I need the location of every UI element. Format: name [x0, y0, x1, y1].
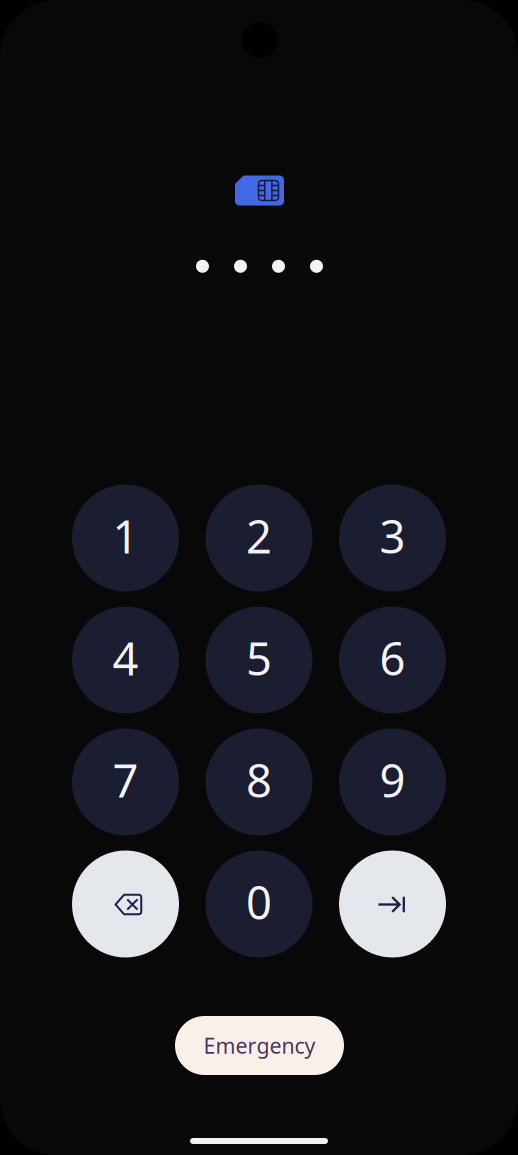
staticText: 3: [379, 506, 405, 566]
staticText: 1: [112, 506, 138, 566]
staticText: 0: [246, 872, 272, 932]
button[interactable]: 2: [205, 484, 312, 591]
button[interactable]: 9: [339, 728, 446, 835]
button[interactable]: 7: [72, 728, 179, 835]
button[interactable]: 3: [339, 484, 446, 591]
button[interactable]: Delete: [72, 850, 179, 957]
button[interactable]: Enter PIN: [339, 850, 446, 957]
button[interactable]: 1: [72, 484, 179, 591]
button[interactable]: Emergency: [175, 1016, 344, 1075]
button[interactable]: 8: [205, 728, 312, 835]
staticText: 7: [112, 750, 138, 810]
staticText: 8: [246, 750, 272, 810]
button[interactable]: 5: [205, 606, 312, 713]
staticText: 9: [379, 750, 405, 810]
staticText: 4: [112, 628, 138, 688]
staticText: Emergency: [203, 1031, 315, 1060]
staticText: 5: [246, 628, 272, 688]
staticText: 6: [379, 628, 405, 688]
button[interactable]: 6: [339, 606, 446, 713]
button[interactable]: 4: [72, 606, 179, 713]
button[interactable]: 0: [205, 850, 312, 957]
staticText: 2: [246, 506, 272, 566]
